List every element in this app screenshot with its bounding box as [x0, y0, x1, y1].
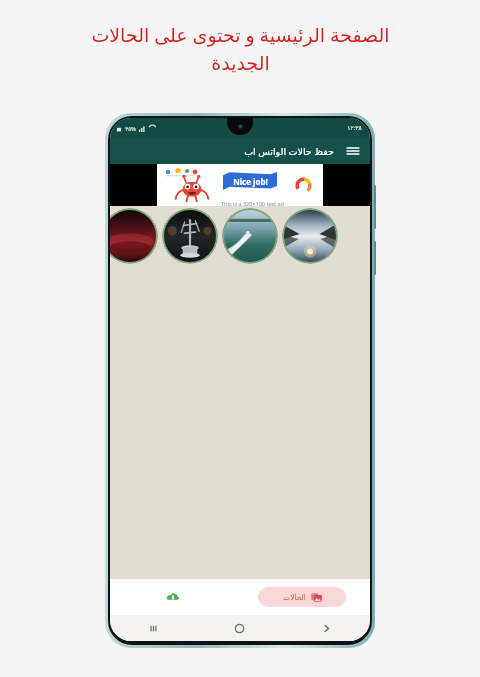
button[interactable]: Status 2	[162, 208, 218, 264]
staticText: الحالات	[283, 593, 306, 602]
staticText: الجديدة	[211, 52, 270, 74]
staticText: ٣٥%	[125, 125, 136, 132]
button[interactable]: Advertisement	[110, 164, 370, 206]
button[interactable]: Downloads	[160, 584, 186, 610]
button[interactable]: Status 3	[222, 208, 278, 264]
staticText: This is a 320×100 test ad	[221, 200, 284, 207]
button[interactable]: Menu	[343, 141, 363, 161]
button[interactable]: Back	[283, 615, 370, 641]
staticText: حفظ حالات الواتس اب	[244, 145, 334, 158]
button[interactable]: Home	[196, 615, 283, 641]
staticText: الصفحة الرئيسية و تحتوى على الحالات	[91, 22, 390, 48]
button[interactable]: الحالات	[258, 587, 346, 607]
staticText: ١٢:٣٨	[347, 124, 362, 132]
button[interactable]: Status 1	[110, 208, 158, 264]
button[interactable]: Status 4	[282, 208, 338, 264]
button[interactable]: Recents	[110, 615, 196, 641]
staticText: Nice job!	[233, 176, 268, 187]
